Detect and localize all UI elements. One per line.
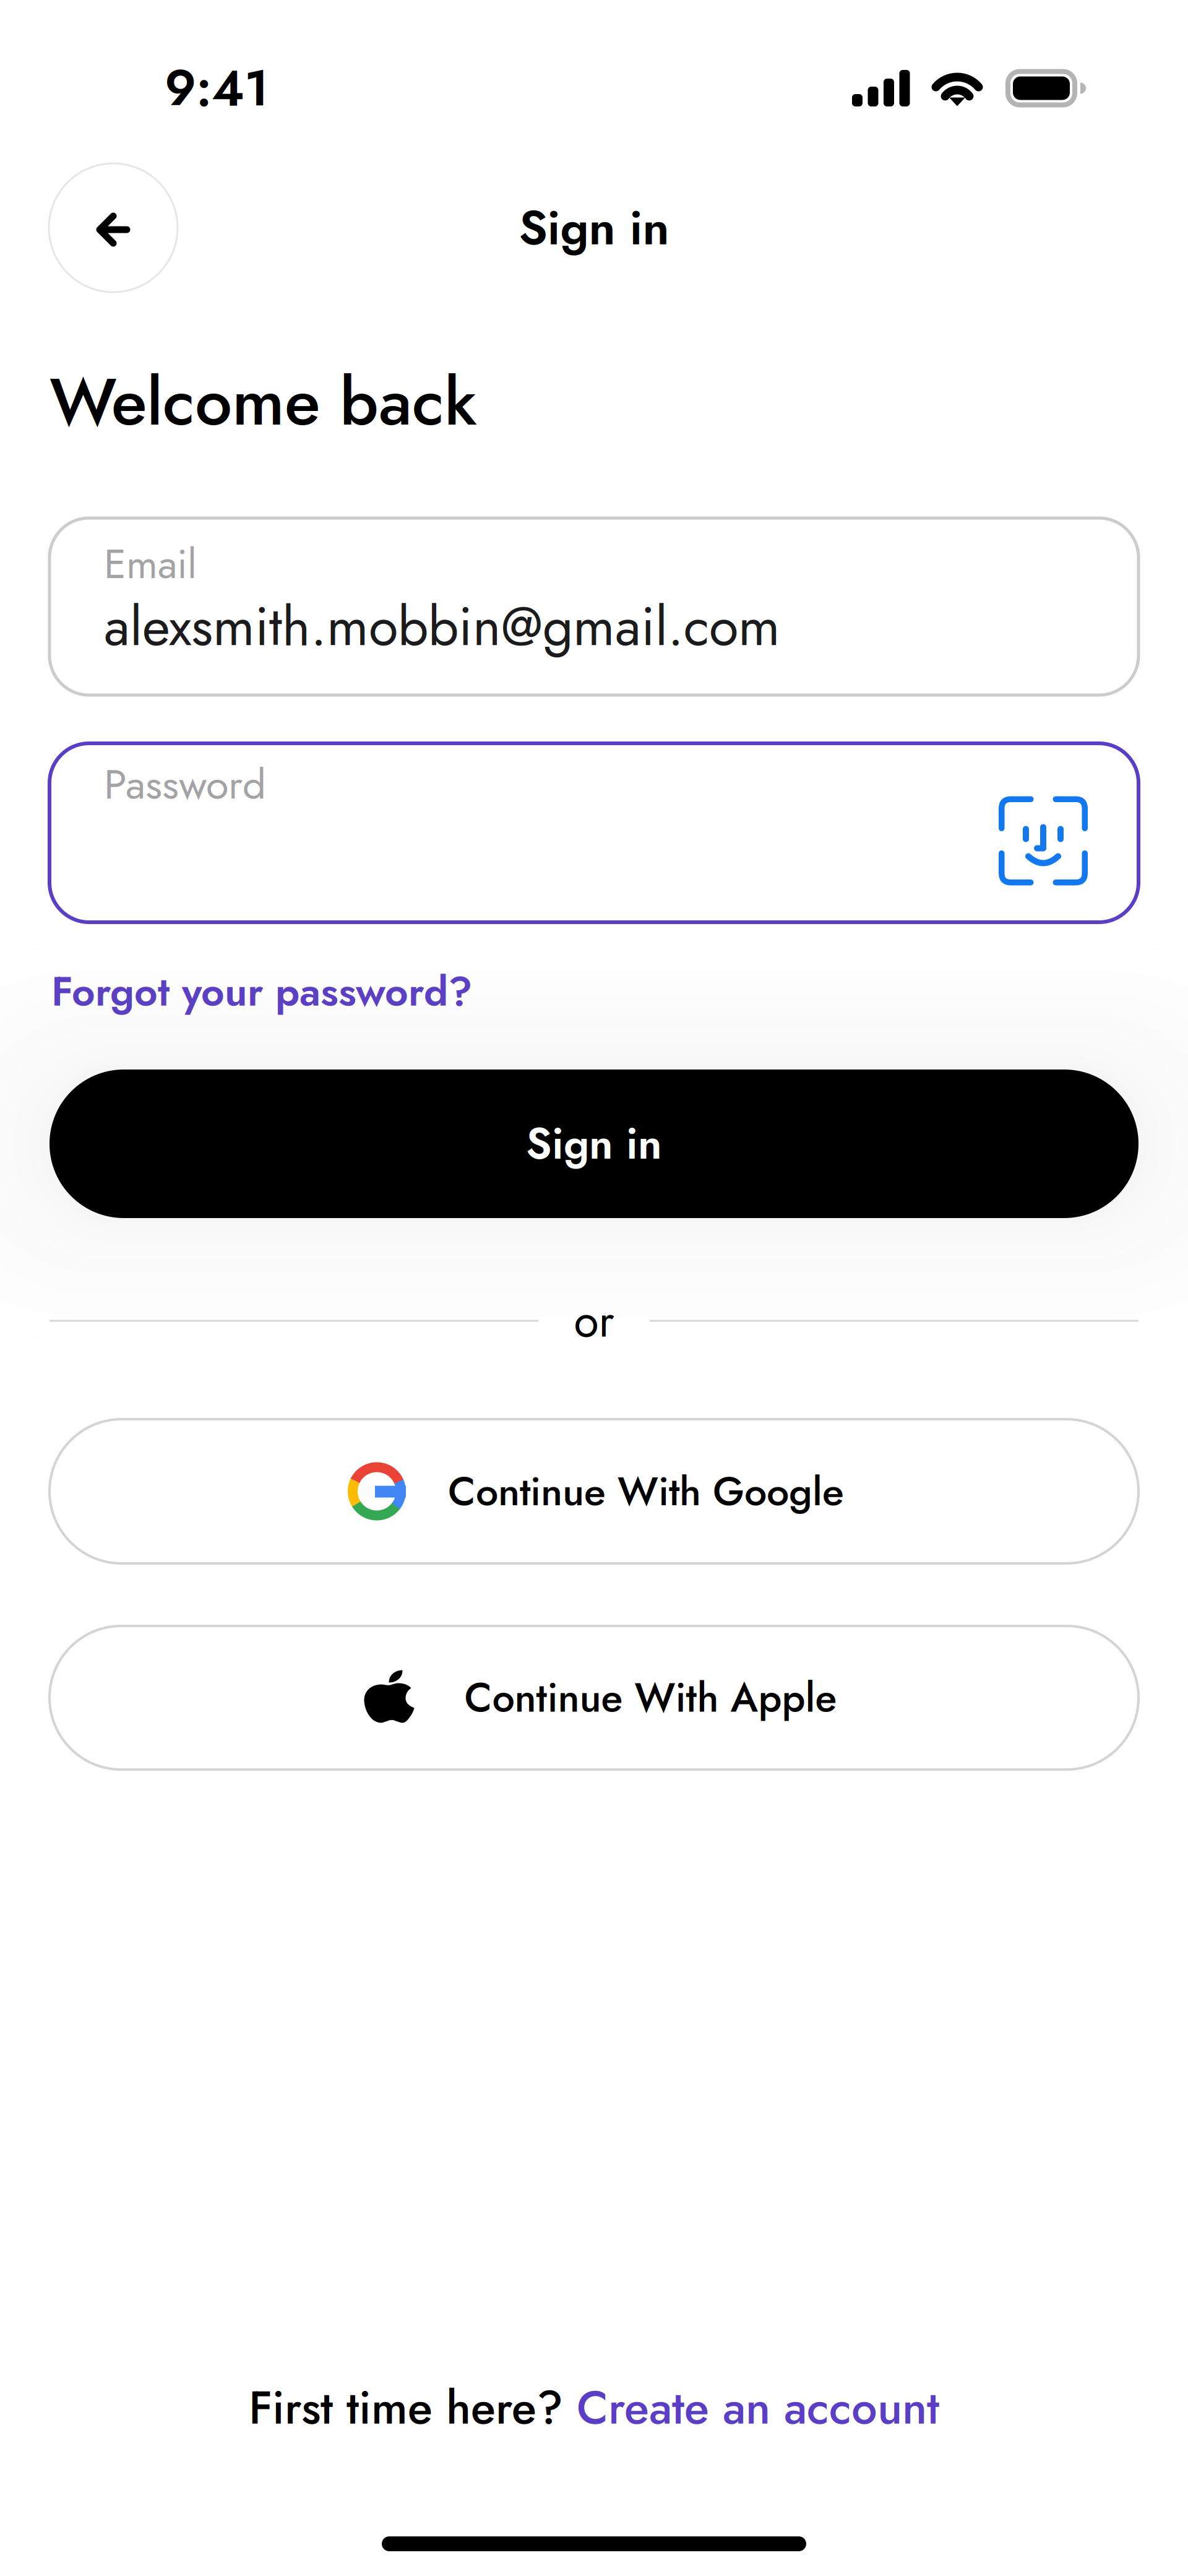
staticText: or	[574, 1288, 614, 1354]
button[interactable]: Back	[49, 163, 178, 292]
staticText: Password	[104, 754, 266, 814]
button[interactable]: Create an account	[577, 2375, 939, 2441]
staticText: First time here?	[249, 2375, 577, 2441]
button[interactable]: Forgot your password?	[51, 962, 473, 1021]
button[interactable]: Sign in	[49, 1070, 1138, 1218]
staticText: alexsmith.mobbin@gmail.com	[104, 588, 780, 665]
staticText: Sign in	[526, 1113, 662, 1175]
staticText: Continue With Google	[448, 1462, 844, 1520]
staticText: Sign in	[519, 193, 669, 262]
staticText: Create an account	[577, 2375, 939, 2441]
staticText: 9:41	[165, 52, 269, 124]
button[interactable]: Continue With Apple	[49, 1626, 1138, 1770]
staticText: Continue With Apple	[464, 1669, 837, 1727]
button[interactable]: Continue With Google	[49, 1419, 1138, 1563]
staticText: Welcome back	[49, 354, 477, 449]
staticText: Email	[104, 535, 197, 593]
staticText: Forgot your password?	[51, 962, 473, 1021]
